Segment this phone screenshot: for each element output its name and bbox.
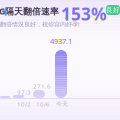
staticText: G隔天翻倍速率 [0, 5, 59, 17]
staticText: 今天 [56, 100, 68, 108]
staticText: 4937.1 [50, 36, 72, 46]
staticText: 10/6 [36, 100, 50, 108]
staticText: 153% [61, 2, 107, 26]
staticText: 10/2 [17, 100, 31, 108]
button[interactable]: 良好 [106, 5, 120, 15]
staticText: 翻倍情況良好，祝你宫内好孕! [0, 20, 80, 28]
staticText: 97.3 [17, 88, 31, 96]
staticText: 良好 [106, 6, 120, 14]
staticText: 271.6 [33, 82, 51, 90]
